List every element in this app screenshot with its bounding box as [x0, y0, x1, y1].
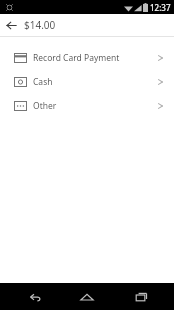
button[interactable]: Recent apps	[121, 283, 161, 310]
staticText: Cash	[33, 76, 157, 88]
button[interactable]: Back	[14, 283, 54, 310]
staticText: Record Card Payment	[33, 52, 157, 64]
staticText: Other	[33, 100, 157, 112]
staticText: 12:37	[150, 2, 171, 13]
staticText: $14.00	[24, 18, 56, 32]
button[interactable]: Other	[0, 94, 174, 118]
button[interactable]: Home	[67, 283, 107, 310]
button[interactable]: Record Card Payment	[0, 46, 174, 70]
button[interactable]: Cash	[0, 70, 174, 94]
button[interactable]: Back	[0, 14, 22, 36]
